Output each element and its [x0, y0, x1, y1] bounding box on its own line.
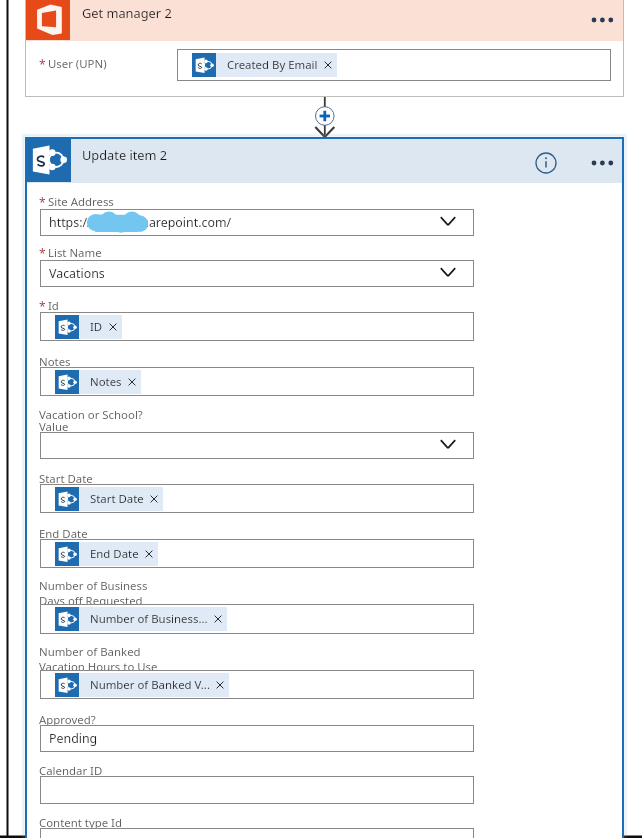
other: Remove token — [324, 61, 332, 69]
button[interactable]: Pending — [40, 725, 474, 752]
staticText: Update item 2 — [82, 146, 168, 163]
button[interactable] — [40, 776, 474, 804]
staticText: Days off Requested — [39, 593, 143, 609]
staticText: List Name — [48, 245, 102, 261]
button[interactable]: Created By Email — [192, 53, 337, 77]
button[interactable]: End Date — [55, 542, 158, 566]
other: Remove token — [214, 615, 222, 623]
staticText: Created By Email — [227, 57, 318, 73]
staticText: Content type Id — [39, 815, 122, 831]
button[interactable]: ID — [40, 312, 474, 341]
button[interactable]: Number of Banked V... — [40, 670, 474, 699]
staticText: Number of Banked V... — [90, 677, 210, 693]
other: Remove token — [109, 323, 117, 331]
staticText: Get manager 2 — [82, 4, 172, 21]
button[interactable]: End Date — [40, 539, 474, 568]
button[interactable]: Notes — [40, 367, 474, 396]
other: Remove token — [128, 378, 136, 386]
button[interactable]: More options — [591, 152, 617, 174]
staticText: Approved? — [39, 712, 96, 728]
staticText: ID — [90, 319, 103, 335]
staticText: Number of Banked — [39, 644, 141, 660]
button[interactable]: Start Date — [55, 487, 163, 511]
staticText: Notes — [39, 354, 71, 370]
staticText: * — [39, 298, 46, 314]
staticText: Calendar ID — [39, 763, 103, 779]
staticText: End Date — [90, 546, 139, 562]
other: Remove token — [145, 550, 153, 558]
button[interactable]: Number of Business... — [40, 604, 474, 634]
staticText: Vacations — [49, 265, 105, 282]
staticText: Number of Business... — [90, 611, 208, 627]
button[interactable] — [40, 432, 474, 459]
staticText: Site Address — [48, 194, 114, 210]
staticText: Vacation or School? — [39, 407, 143, 423]
button[interactable]: Notes — [55, 370, 141, 394]
staticText: Notes — [90, 374, 122, 390]
staticText: Vacation Hours to Use — [39, 659, 158, 675]
staticText: Number of Business — [39, 578, 148, 594]
staticText: Start Date — [90, 491, 144, 507]
staticText: * — [39, 56, 46, 72]
staticText: Start Date — [39, 471, 93, 487]
button[interactable]: Vacations — [40, 260, 474, 287]
staticText: Pending — [49, 730, 98, 747]
button[interactable]: Created By Email — [177, 49, 611, 81]
staticText: * — [39, 194, 46, 210]
staticText: https:// — [49, 214, 92, 231]
other: Remove token — [216, 681, 224, 689]
button[interactable]: Number of Business... — [55, 607, 227, 631]
staticText: User (UPN) — [48, 56, 107, 72]
button[interactable]: More options — [591, 9, 617, 31]
other: Remove token — [150, 495, 158, 503]
staticText: .sharepoint.com/ — [132, 214, 232, 231]
button[interactable]: ID — [55, 315, 122, 339]
staticText: * — [39, 245, 46, 261]
staticText: Value — [39, 419, 69, 435]
button[interactable] — [40, 828, 474, 838]
button[interactable]: Information — [535, 152, 557, 174]
button[interactable]: Number of Banked V... — [55, 673, 229, 697]
button[interactable]: Start Date — [40, 484, 474, 513]
staticText: Id — [48, 298, 59, 314]
button[interactable]: https:// — [40, 209, 474, 236]
staticText: End Date — [39, 526, 88, 542]
